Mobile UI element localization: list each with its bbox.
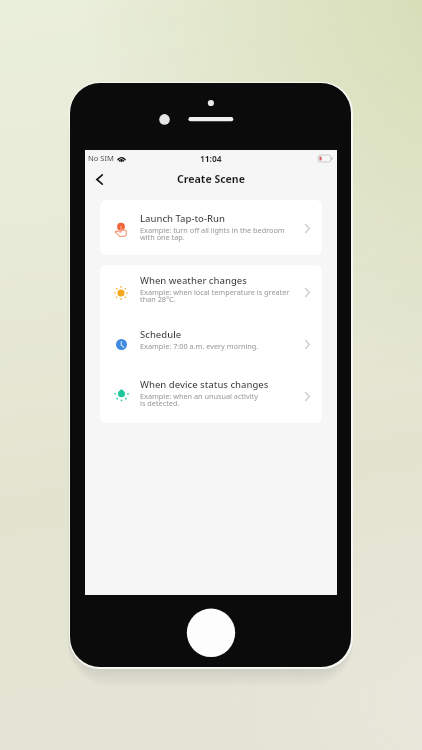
staticText: Schedule: [140, 328, 182, 341]
button[interactable]: When device status changes: [100, 368, 322, 423]
staticText: 11:04: [200, 153, 222, 164]
staticText: Example: 7:00 a.m. every morning.: [140, 341, 259, 351]
staticText: When weather changes: [140, 274, 247, 287]
staticText: Launch Tap-to-Run: [140, 212, 225, 225]
staticText: Example: turn off all lights in the bedr…: [140, 225, 285, 242]
staticText: Example: when local temperature is great…: [140, 287, 290, 304]
button[interactable]: Back: [87, 169, 111, 190]
staticText: Example: when an unusual activity is det…: [140, 391, 258, 408]
staticText: No SIM: [88, 153, 114, 163]
staticText: When device status changes: [140, 378, 269, 391]
button[interactable]: Launch Tap-to-Run: [100, 200, 322, 255]
staticText: Create Scene: [177, 172, 245, 186]
button[interactable]: When weather changes: [100, 265, 322, 318]
button[interactable]: Schedule: [100, 318, 322, 368]
